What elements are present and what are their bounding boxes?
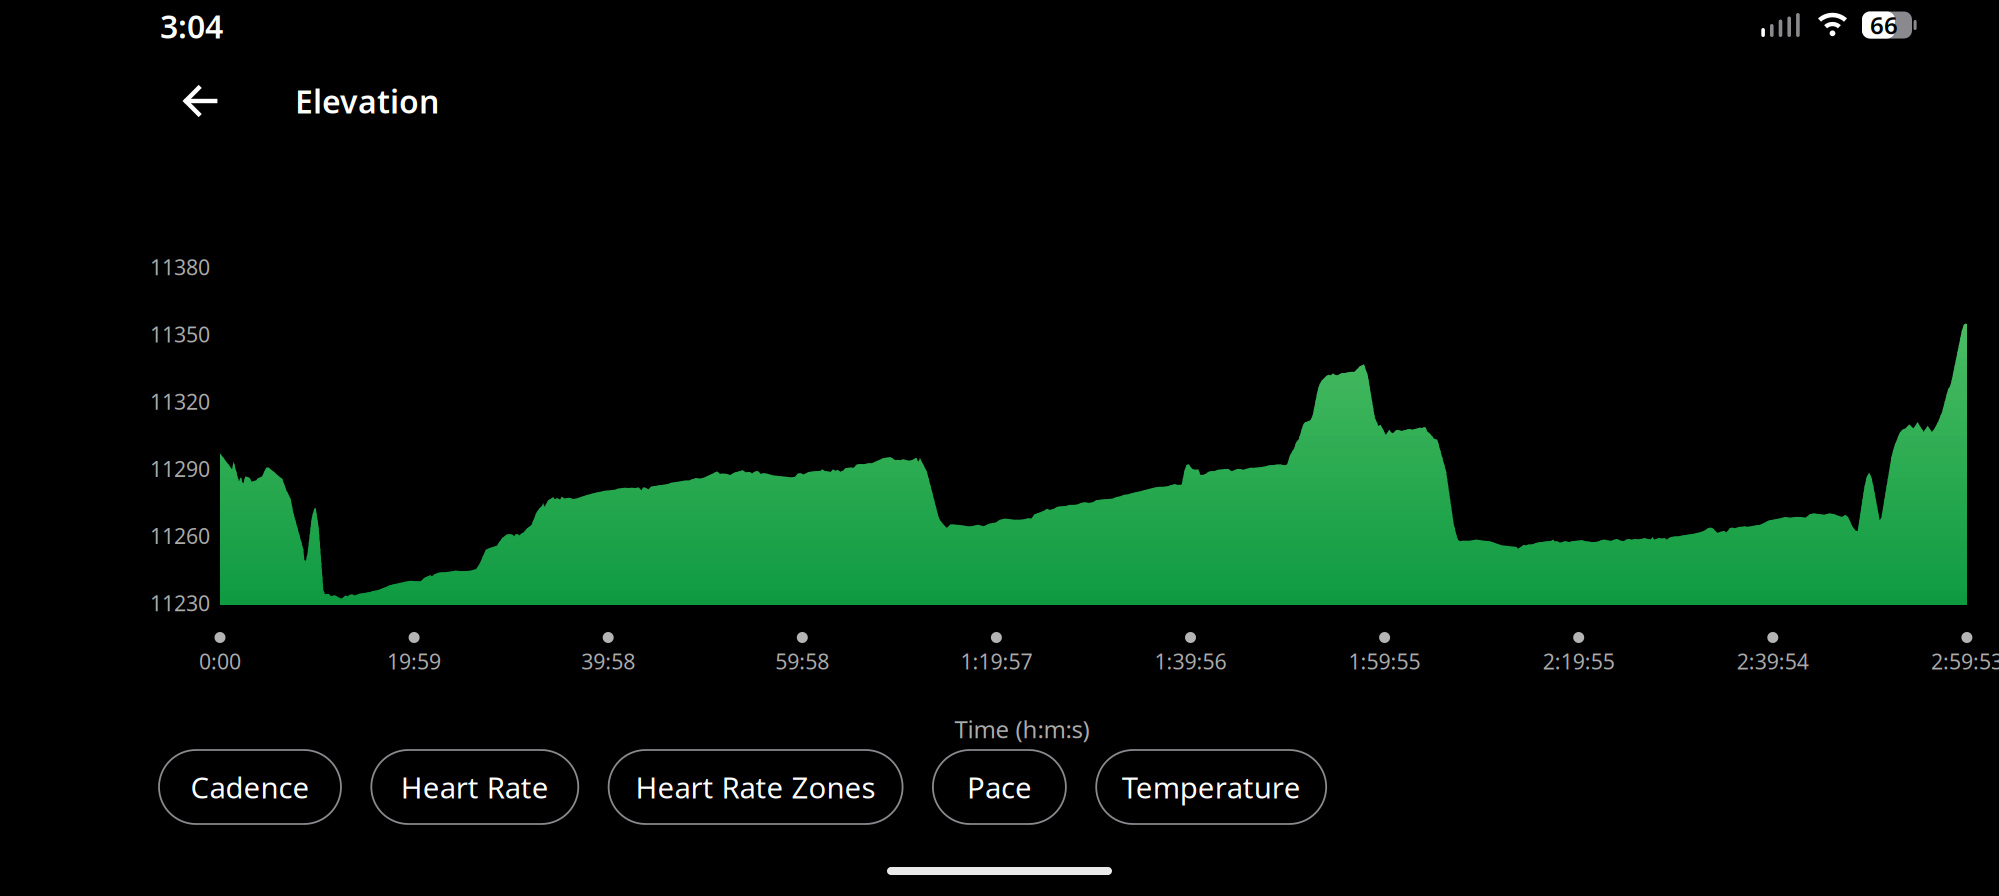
staticText: 1:39:56 [1154,647,1226,675]
staticText: 59:58 [775,647,829,675]
staticText: 11230 [150,589,210,617]
staticText: 19:59 [387,647,441,675]
button[interactable]: Heart Rate [371,750,578,824]
staticText: 11260 [150,522,210,550]
staticText: 39:58 [581,647,635,675]
button[interactable]: Heart Rate Zones [609,750,903,824]
staticText: 2:39:54 [1737,647,1809,675]
button[interactable]: Temperature [1096,750,1326,824]
staticText: Heart Rate [401,767,549,806]
staticText: 0:00 [199,647,241,675]
staticText: 11350 [150,320,210,348]
staticText: Heart Rate Zones [636,767,876,806]
staticText: Time (h:m:s) [954,713,1089,745]
staticText: 1:19:57 [960,647,1032,675]
staticText: 66 [1870,9,1898,41]
staticText: Temperature [1122,767,1301,806]
staticText: 1:59:55 [1349,647,1421,675]
staticText: Cadence [190,767,309,806]
staticText: Pace [967,767,1032,806]
staticText: 11380 [150,253,210,281]
staticText: 11320 [150,387,210,415]
button[interactable]: Back [164,70,238,132]
staticText: 3:04 [160,5,223,47]
staticText: 2:59:53 [1931,647,1999,675]
staticText: 2:19:55 [1543,647,1615,675]
button[interactable]: Cadence [159,750,341,824]
staticText: Elevation [295,80,439,122]
staticText: 11290 [150,454,210,483]
button[interactable]: Pace [933,750,1066,824]
